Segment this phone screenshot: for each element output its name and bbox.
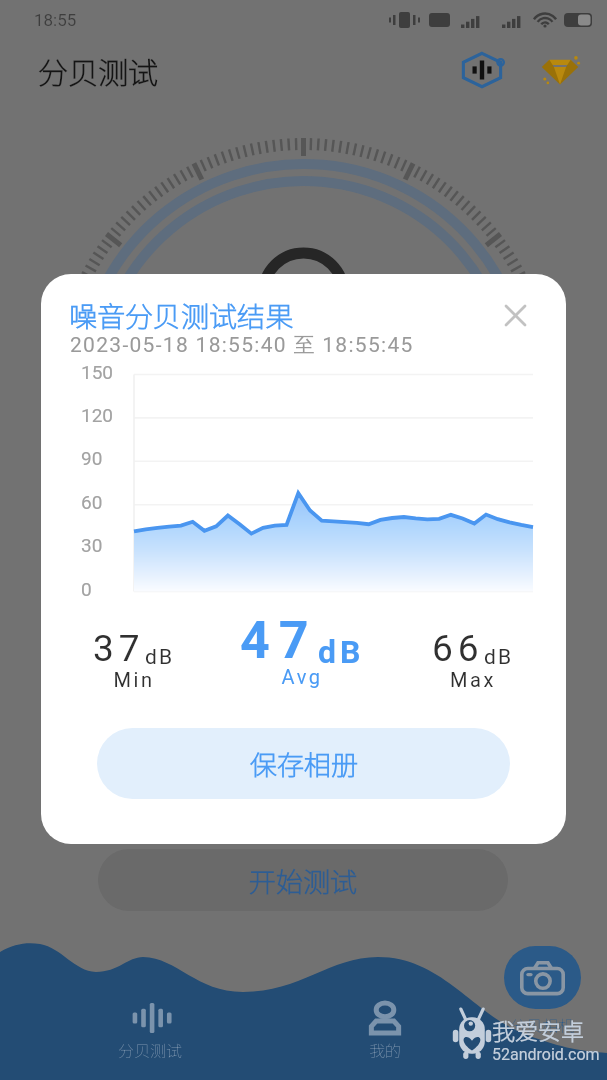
button[interactable]: 我的 — [315, 996, 455, 1062]
staticText: 120 — [81, 404, 114, 426]
staticText: dB — [145, 645, 175, 670]
staticText: dB — [318, 633, 365, 671]
staticText: 52android.com — [492, 1045, 600, 1064]
button[interactable]: Close — [496, 296, 534, 334]
staticText: 47 — [240, 610, 318, 671]
staticText: 分贝相机 — [472, 1013, 607, 1036]
staticText: 2023-05-18 18:55:40 至 18:55:45 — [70, 332, 414, 358]
button[interactable]: 分贝测试 — [80, 996, 220, 1062]
staticText: 18:55 — [34, 10, 77, 30]
button[interactable]: Camera — [504, 946, 581, 1009]
button[interactable]: Premium — [537, 47, 583, 93]
staticText: Avg — [182, 665, 422, 688]
staticText: 90 — [81, 447, 103, 469]
button[interactable]: 分贝相机 — [472, 996, 607, 1062]
button[interactable]: Noise detector — [459, 47, 505, 93]
staticText: 分贝测试 — [80, 1038, 220, 1061]
staticText: 30 — [81, 534, 103, 556]
button[interactable]: 开始测试 — [98, 849, 508, 911]
staticText: 60 — [81, 491, 103, 513]
staticText: Min — [41, 668, 254, 691]
staticText: Max — [353, 668, 566, 691]
staticText: 开始测试 — [249, 861, 357, 900]
staticText: 我爱安卓 — [492, 1013, 584, 1046]
staticText: 37 — [93, 627, 145, 670]
staticText: 噪音分贝测试结果 — [69, 295, 294, 336]
staticText: 0 — [81, 578, 92, 600]
staticText: 保存相册 — [250, 744, 358, 783]
staticText: 我的 — [315, 1038, 455, 1061]
staticText: dB — [484, 645, 514, 670]
button[interactable]: 保存相册 — [97, 728, 510, 799]
staticText: 66 — [432, 627, 484, 670]
staticText: 150 — [81, 361, 114, 383]
staticText: 分贝测试 — [38, 49, 158, 92]
